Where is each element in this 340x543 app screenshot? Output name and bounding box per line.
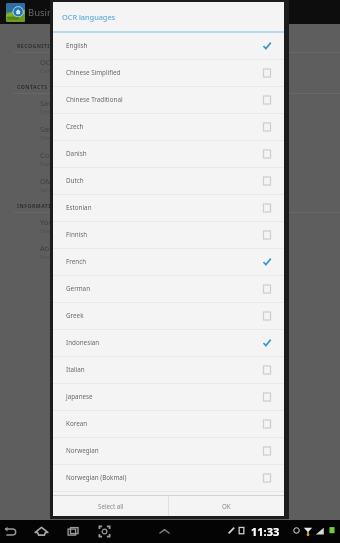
staticText: RECOGNITION — [17, 42, 59, 49]
button[interactable]: English — [53, 33, 284, 59]
staticText: Business Card Reader — [28, 6, 125, 19]
staticText: Select all — [98, 502, 124, 510]
button[interactable]: Screenshot — [97, 524, 112, 539]
button[interactable]: Danish — [53, 141, 284, 167]
button[interactable]: Italian — [53, 357, 284, 383]
staticText: Czech — [66, 122, 262, 131]
button[interactable]: Chinese Traditional — [53, 87, 284, 113]
button[interactable]: OMR settings — [0, 172, 340, 198]
staticText: Chinese Simplified — [66, 68, 262, 77]
button[interactable]: Dutch — [53, 168, 284, 194]
staticText: Greek — [66, 311, 262, 320]
staticText: Estonian — [66, 203, 262, 212]
staticText: Danish — [66, 149, 262, 158]
button[interactable]: Your feedback — [0, 213, 340, 239]
button[interactable]: Indonesian — [53, 330, 284, 356]
staticText: Japanese — [66, 392, 262, 401]
staticText: OMR settings — [40, 176, 88, 186]
staticText: Store new contacts on the phone — [40, 109, 118, 116]
staticText: Chinese Traditional — [66, 95, 262, 104]
button[interactable]: Select all — [53, 496, 168, 516]
staticText: Country code — [40, 150, 88, 160]
staticText: Dutch — [66, 176, 262, 185]
button[interactable]: Japanese — [53, 384, 284, 410]
staticText: Save to account — [40, 124, 96, 134]
staticText: Norwegian — [66, 446, 262, 455]
button[interactable]: Greek — [53, 303, 284, 329]
button[interactable]: OK — [169, 496, 284, 516]
staticText: German — [66, 284, 262, 293]
staticText: French — [66, 257, 262, 266]
button[interactable]: Norwegian (Bokmal) — [53, 465, 284, 491]
button[interactable]: Norwegian — [53, 438, 284, 464]
staticText: Set up optical mark recognition — [40, 187, 114, 194]
staticText: Finnish — [66, 230, 262, 239]
staticText: Italian — [66, 365, 262, 374]
staticText: English — [66, 41, 262, 50]
button[interactable]: Home — [34, 524, 49, 539]
button[interactable]: Korean — [53, 411, 284, 437]
button[interactable]: Country code — [0, 146, 340, 172]
staticText: Charge us with your opinion — [40, 228, 107, 235]
staticText: Enable country code detection — [40, 161, 112, 168]
staticText: Configure recognition languages — [40, 68, 118, 75]
button[interactable]: French — [53, 249, 284, 275]
staticText: Choose account to store contacts — [40, 135, 118, 142]
staticText: Your feedback — [40, 217, 91, 227]
staticText: OCR languages — [40, 57, 94, 67]
button[interactable]: German — [53, 276, 284, 302]
button[interactable]: Save to account — [0, 120, 340, 146]
staticText: About — [40, 243, 62, 253]
button[interactable]: Estonian — [53, 195, 284, 221]
staticText: Save to phone — [40, 98, 91, 108]
staticText: Find out more about the app — [40, 254, 108, 261]
staticText: 11:33 — [251, 524, 280, 539]
button[interactable]: Czech — [53, 114, 284, 140]
button[interactable]: OCR languages — [0, 53, 340, 79]
button[interactable]: Chinese Simplified — [53, 60, 284, 86]
staticText: Indonesian — [66, 338, 262, 347]
button[interactable]: Save to phone — [0, 94, 340, 120]
button[interactable]: Show menu — [157, 524, 172, 539]
staticText: OCR languages — [62, 12, 116, 22]
staticText: Korean — [66, 419, 262, 428]
button[interactable]: Finnish — [53, 222, 284, 248]
staticText: OK — [222, 502, 231, 510]
button[interactable]: Recent apps — [66, 524, 81, 539]
staticText: INFORMATION — [17, 202, 60, 209]
staticText: CONTACTS — [17, 83, 48, 90]
button[interactable]: About — [0, 239, 340, 265]
button[interactable]: Back — [3, 524, 18, 539]
staticText: Norwegian (Bokmal) — [66, 473, 262, 482]
